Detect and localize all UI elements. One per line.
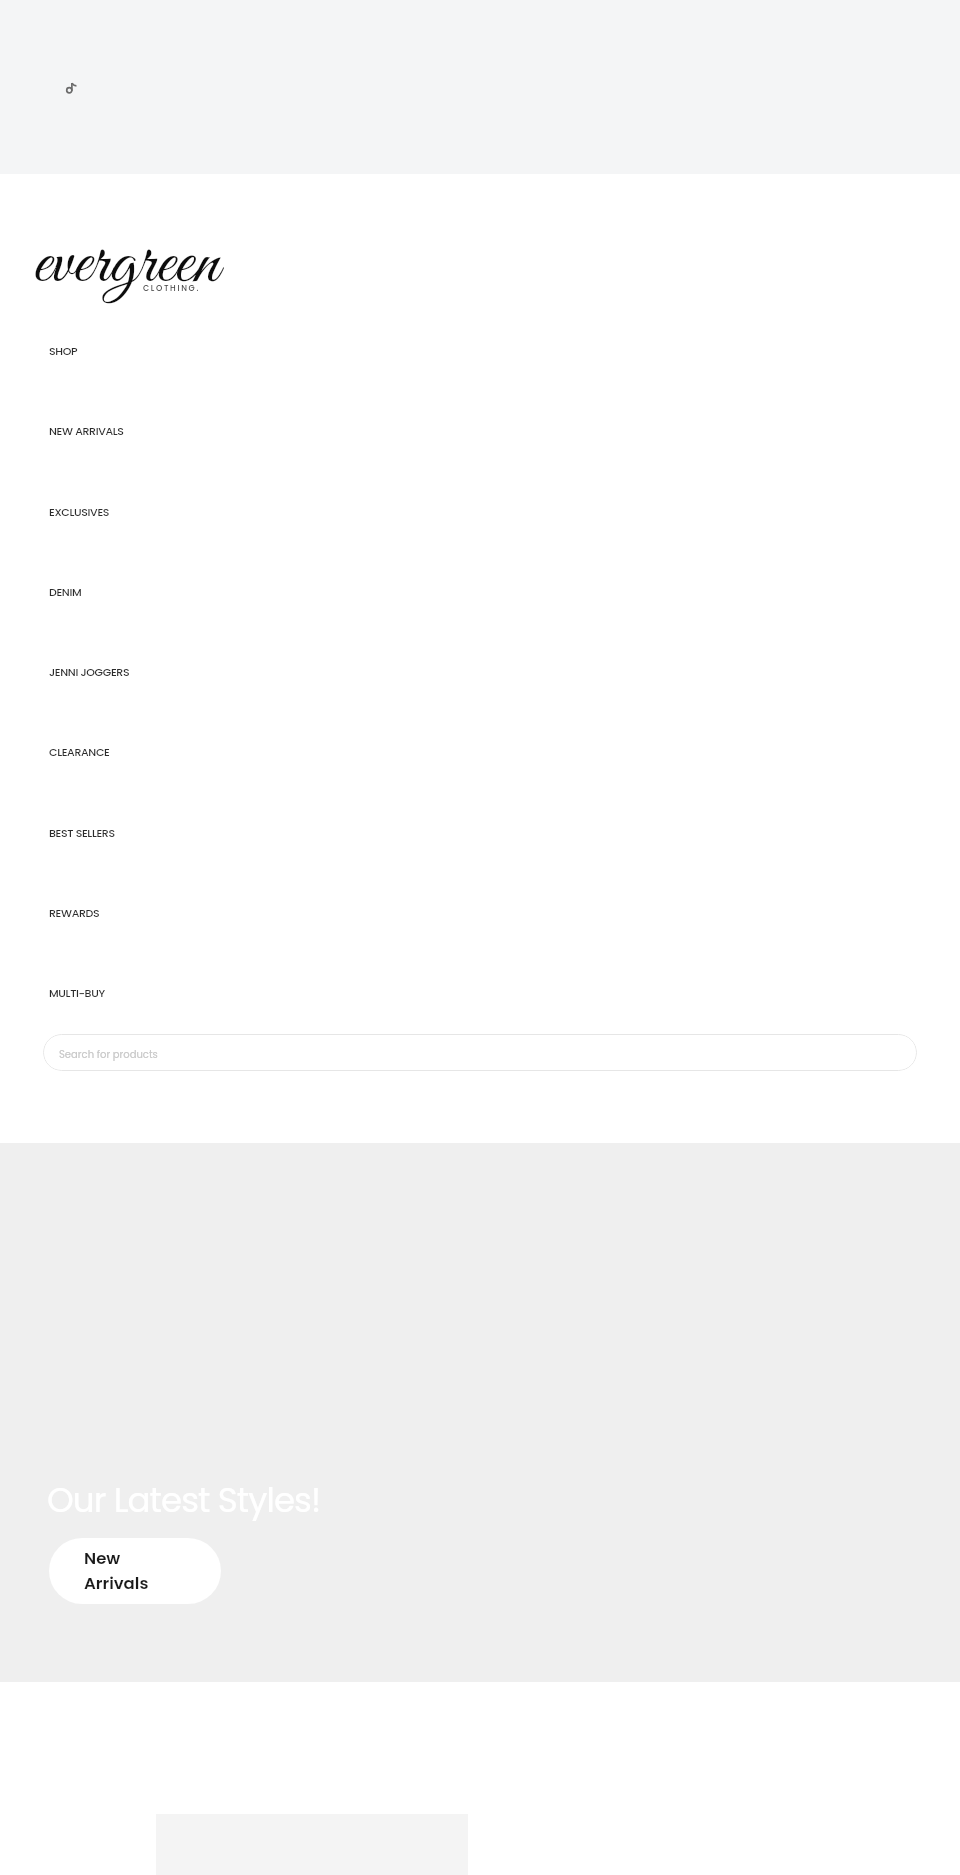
button[interactable]: Search for products <box>43 1034 917 1071</box>
button[interactable]: REWARDS <box>0 890 960 970</box>
button[interactable]: DENIM <box>0 569 960 649</box>
button[interactable]: BEST SELLERS <box>0 810 960 890</box>
staticText: SHOP <box>49 343 78 358</box>
staticText: EXCLUSIVES <box>49 504 110 519</box>
button[interactable]: New Arrivals <box>49 1538 221 1604</box>
staticText: CLEARANCE <box>49 744 110 759</box>
button[interactable]: EXCLUSIVES <box>0 489 960 569</box>
button[interactable]: TikTok <box>56 72 86 102</box>
button[interactable]: CLEARANCE <box>0 729 960 809</box>
staticText: Search for products <box>59 1047 158 1061</box>
staticText: JENNI JOGGERS <box>49 664 130 679</box>
staticText: New Arrivals <box>84 1547 149 1595</box>
button[interactable]: MULTI-BUY <box>0 970 960 1050</box>
button[interactable]: NEW ARRIVALS <box>0 408 960 488</box>
button[interactable]: Evergreen Clothing home <box>30 240 230 310</box>
staticText: Our Latest Styles! <box>47 1476 321 1524</box>
staticText: DENIM <box>49 584 82 599</box>
button[interactable]: SHOP <box>0 328 960 408</box>
staticText: MULTI-BUY <box>49 985 105 1000</box>
staticText: CLOTHING. <box>143 283 201 294</box>
staticText: REWARDS <box>49 905 100 920</box>
staticText: evergreen <box>33 221 219 310</box>
staticText: BEST SELLERS <box>49 825 115 840</box>
button[interactable]: JENNI JOGGERS <box>0 649 960 729</box>
staticText: NEW ARRIVALS <box>49 423 124 438</box>
